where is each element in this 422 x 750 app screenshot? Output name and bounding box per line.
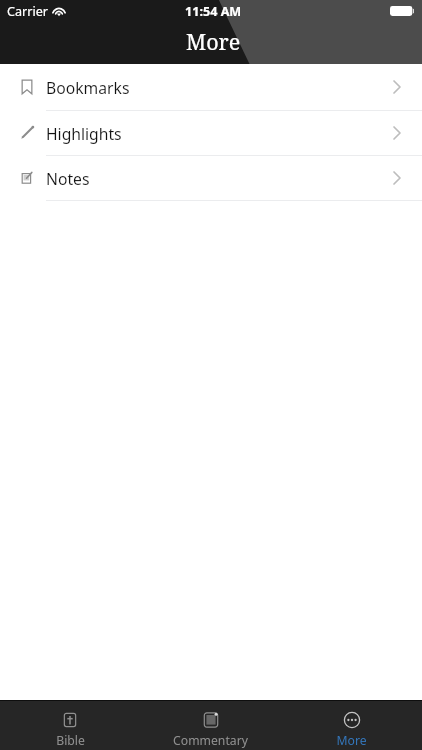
staticText: Bookmarks — [46, 77, 130, 98]
button[interactable]: Highlights — [0, 111, 422, 156]
button[interactable]: Bookmarks — [0, 64, 422, 111]
staticText: Carrier — [7, 3, 48, 20]
button[interactable]: Notes — [0, 156, 422, 201]
staticText: 11:54 AM — [185, 3, 242, 20]
staticText: More — [336, 732, 367, 749]
staticText: Notes — [46, 168, 90, 189]
staticText: More — [186, 27, 241, 56]
staticText: Bible — [56, 732, 85, 749]
staticText: Commentary — [173, 732, 248, 749]
button[interactable]: Bible — [0, 701, 140, 750]
button[interactable]: More — [281, 701, 422, 750]
button[interactable]: Commentary — [140, 701, 281, 750]
staticText: Highlights — [46, 123, 122, 144]
